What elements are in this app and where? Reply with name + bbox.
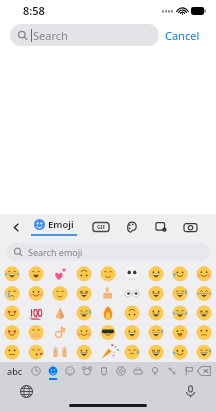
button[interactable]: Camera [182,219,198,235]
button[interactable]: Memoji [153,219,169,235]
button[interactable]: Emoji [31,218,77,236]
button[interactable]: Food [95,362,112,380]
button[interactable]: Objects [146,362,163,380]
button[interactable]: GIF [91,220,111,234]
button[interactable]: Animals [78,362,95,380]
staticText: Search emoji [28,246,83,258]
button[interactable]: Symbols [163,362,180,380]
staticText: 8:58 [23,3,45,18]
button[interactable]: Delete [197,365,211,377]
button[interactable]: Stickers [124,219,140,235]
button[interactable]: Search [10,24,159,46]
button[interactable]: abc [5,365,25,377]
staticText: Search [33,28,68,43]
button[interactable]: Search emoji [6,243,210,261]
button[interactable]: Recents [28,362,44,380]
button[interactable]: Flags [180,362,197,380]
button[interactable]: Back [8,219,24,235]
button[interactable]: Travel [129,362,146,380]
button[interactable]: Smileys [44,362,61,380]
button[interactable]: Dictation [182,383,198,399]
staticText: Cancel [165,28,200,43]
staticText: Emoji [48,218,74,231]
button[interactable]: Change keyboard [18,383,34,399]
button[interactable] [0,264,216,362]
button[interactable]: People [61,362,78,380]
staticText: abc [7,365,23,377]
button[interactable]: Activity [112,362,129,380]
staticText: GIF [97,224,106,231]
button[interactable]: Cancel [159,24,206,47]
